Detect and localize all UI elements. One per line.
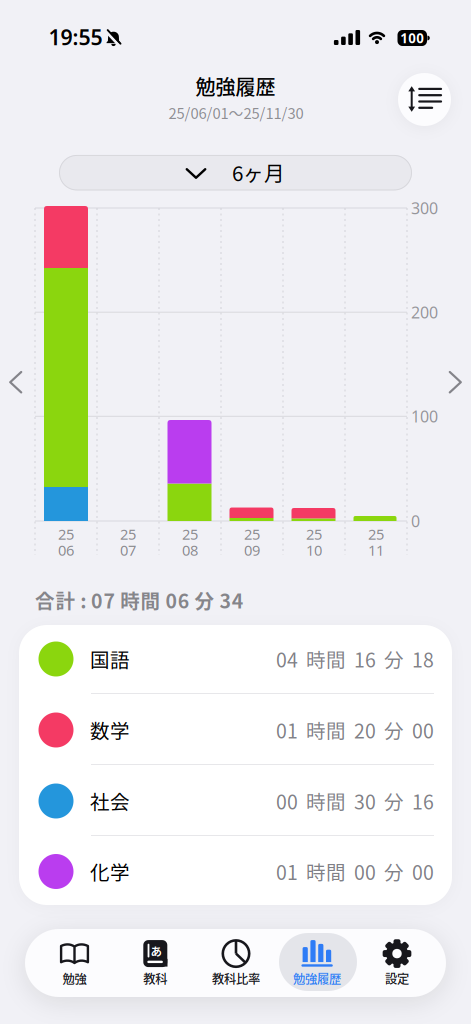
button[interactable]: Previous period [5, 369, 27, 395]
button[interactable]: Next period [444, 369, 466, 395]
staticText: 0 [411, 510, 420, 532]
staticText: 25 [368, 524, 384, 544]
staticText: 01 時間 20 分 00 [276, 716, 434, 744]
staticText: 19:55 [48, 23, 102, 51]
staticText: 300 [411, 197, 438, 219]
staticText: 25 [244, 524, 260, 544]
staticText: 200 [411, 302, 438, 323]
button[interactable]: あ [115, 933, 195, 993]
staticText: 25 [182, 524, 198, 544]
staticText: 100 [400, 29, 424, 47]
staticText: 04 時間 16 分 18 [276, 645, 434, 673]
staticText: 09 [244, 540, 260, 560]
staticText: 化学 [90, 857, 130, 886]
staticText: 25/06/01～25/11/30 [168, 102, 303, 123]
button[interactable]: 6ヶ月 [59, 155, 412, 190]
staticText: 勉強履歴 [293, 970, 341, 987]
staticText: 教科 [143, 970, 167, 987]
staticText: 設定 [385, 970, 409, 987]
staticText: あ [151, 943, 163, 959]
staticText: 100 [411, 406, 438, 427]
button[interactable]: 設定 [357, 933, 437, 993]
staticText: 06 [58, 540, 74, 560]
staticText: 25 [120, 524, 136, 544]
staticText: 6ヶ月 [232, 157, 285, 187]
staticText: 合計 : 07 時間 06 分 34 [35, 586, 244, 614]
staticText: 教科比率 [212, 970, 260, 987]
staticText: 25 [58, 524, 74, 544]
staticText: 数学 [90, 716, 130, 744]
staticText: 勉強履歴 [195, 71, 275, 100]
staticText: 01 時間 00 分 00 [276, 857, 434, 886]
button[interactable]: Sort [398, 73, 451, 126]
staticText: 08 [182, 540, 198, 560]
button[interactable]: 勉強履歴 [277, 933, 357, 993]
staticText: 11 [368, 540, 384, 560]
staticText: 社会 [90, 787, 130, 815]
staticText: 07 [120, 540, 136, 560]
staticText: 00 時間 30 分 16 [276, 787, 434, 815]
staticText: 10 [306, 540, 322, 560]
button[interactable]: 教科比率 [196, 933, 276, 993]
staticText: 勉強 [62, 970, 86, 987]
staticText: 国語 [90, 645, 130, 673]
button[interactable]: 勉強 [34, 933, 114, 993]
staticText: 25 [306, 524, 322, 544]
